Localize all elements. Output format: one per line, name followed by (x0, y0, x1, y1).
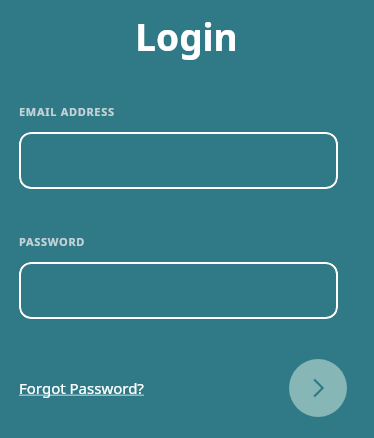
staticText: EMAIL ADDRESS (19, 104, 115, 119)
button[interactable]: Forgot Password? (19, 378, 144, 398)
button[interactable]: Sign in (289, 359, 347, 417)
button[interactable]: Email address (19, 132, 338, 189)
staticText: Login (27, 11, 346, 61)
staticText: PASSWORD (19, 234, 86, 249)
staticText: Forgot Password? (19, 378, 144, 398)
button[interactable]: Password (19, 262, 338, 319)
